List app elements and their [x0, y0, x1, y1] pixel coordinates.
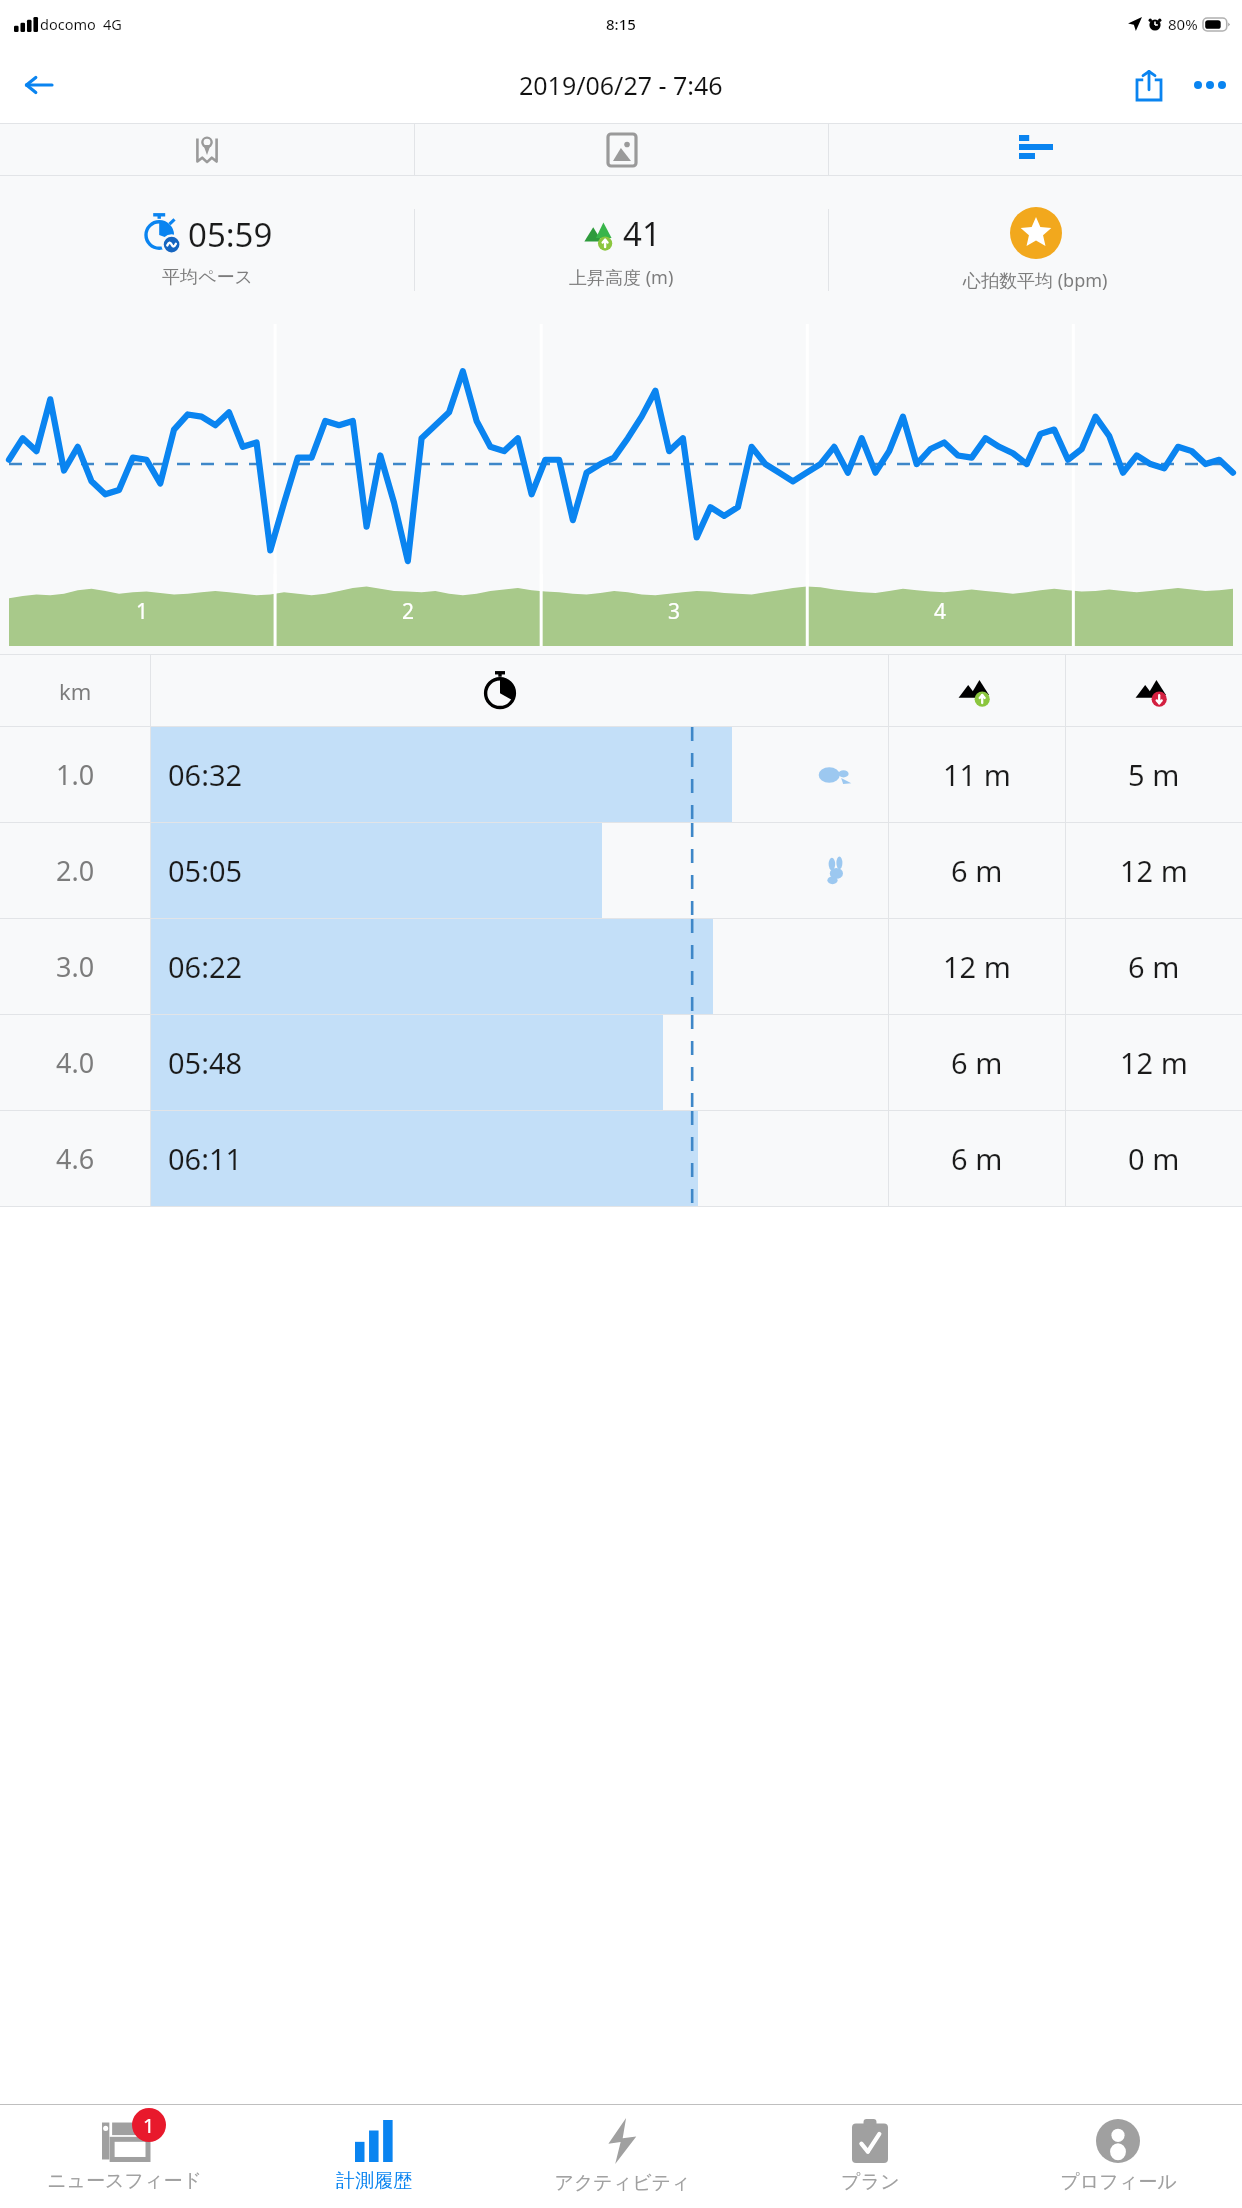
staticText: 3.0: [56, 948, 95, 985]
staticText: 1: [143, 2112, 155, 2139]
button[interactable]: 1.0: [0, 727, 1242, 823]
staticText: 05:05: [168, 851, 243, 890]
staticText: 6 m: [951, 851, 1003, 890]
staticText: 8:15: [606, 14, 636, 34]
button[interactable]: More options: [1178, 53, 1242, 117]
staticText: 12 m: [943, 947, 1011, 986]
staticText: 05:59: [188, 212, 273, 257]
staticText: km: [59, 676, 92, 706]
button[interactable]: アクティビティ: [498, 2105, 746, 2208]
staticText: 1.0: [56, 756, 95, 793]
staticText: 2.0: [56, 852, 95, 889]
staticText: 4.6: [56, 1140, 95, 1177]
staticText: 12 m: [1120, 851, 1188, 890]
staticText: アクティビティ: [554, 2171, 691, 2195]
staticText: 1: [136, 597, 149, 626]
button[interactable]: 心拍数平均 (bpm): [829, 184, 1242, 316]
staticText: 2: [402, 597, 415, 626]
staticText: 2019/06/27 - 7:46: [519, 68, 723, 102]
button[interactable]: 4.0: [0, 1015, 1242, 1111]
staticText: 41: [623, 211, 661, 256]
staticText: 06:32: [168, 755, 243, 794]
staticText: 心拍数平均 (bpm): [963, 268, 1108, 293]
staticText: 80%: [1168, 14, 1198, 34]
button[interactable]: 2.0: [0, 823, 1242, 919]
button[interactable]: 3.0: [0, 919, 1242, 1015]
staticText: 6 m: [951, 1139, 1003, 1178]
staticText: 6 m: [1128, 947, 1180, 986]
button[interactable]: 1: [0, 2105, 249, 2208]
button[interactable]: Photos: [415, 124, 828, 175]
button[interactable]: Charts: [829, 124, 1242, 175]
staticText: 5 m: [1128, 755, 1180, 794]
button[interactable]: Share: [1120, 56, 1178, 114]
staticText: ニュースフィード: [47, 2169, 202, 2193]
staticText: プラン: [841, 2170, 900, 2194]
staticText: 4G: [103, 14, 122, 34]
staticText: 6 m: [951, 1043, 1003, 1082]
button[interactable]: 4.6: [0, 1111, 1242, 1207]
button[interactable]: Map: [0, 124, 414, 175]
button[interactable]: プロフィール: [994, 2105, 1242, 2208]
button[interactable]: 05:59: [0, 184, 414, 316]
staticText: docomo: [40, 14, 96, 34]
staticText: プロフィール: [1060, 2170, 1177, 2194]
staticText: 12 m: [1120, 1043, 1188, 1082]
button[interactable]: プラン: [746, 2105, 994, 2208]
staticText: 4.0: [56, 1044, 95, 1081]
staticText: 05:48: [168, 1043, 243, 1082]
button[interactable]: 計測履歴: [249, 2105, 498, 2208]
staticText: 4: [934, 597, 947, 626]
staticText: 3: [668, 597, 681, 626]
staticText: 11 m: [943, 755, 1011, 794]
button[interactable]: 41: [415, 184, 828, 316]
staticText: 計測履歴: [336, 2169, 412, 2193]
staticText: 06:11: [168, 1139, 243, 1178]
button[interactable]: Back: [10, 57, 66, 113]
staticText: 06:22: [168, 947, 243, 986]
staticText: 上昇高度 (m): [569, 265, 674, 290]
staticText: 0 m: [1128, 1139, 1180, 1178]
staticText: 平均ペース: [162, 266, 253, 289]
